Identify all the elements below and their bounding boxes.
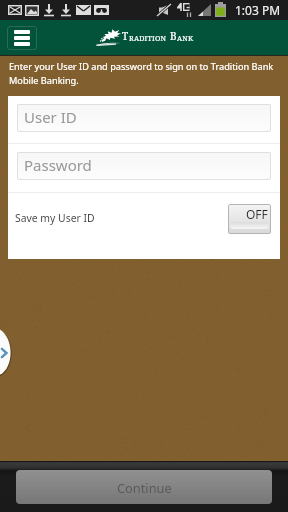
staticText: T	[122, 29, 129, 43]
staticText: Continue	[117, 479, 172, 496]
staticText: B	[170, 29, 177, 43]
staticText: User ID	[24, 107, 77, 127]
staticText: Enter your User ID and password to sign …	[9, 60, 284, 87]
staticText: ANK	[177, 33, 194, 43]
button[interactable]: Open side panel	[0, 328, 14, 378]
staticText: 1:03 PM	[235, 2, 281, 18]
staticText: RADITION	[129, 33, 167, 43]
button[interactable]: User ID	[17, 104, 271, 132]
button[interactable]: Open navigation menu	[7, 26, 37, 50]
staticText: OFF	[246, 206, 268, 222]
button[interactable]: Password	[17, 152, 271, 180]
button[interactable]: Continue	[16, 470, 272, 504]
staticText: Save my User ID	[15, 211, 95, 225]
staticText: Password	[24, 155, 92, 175]
button[interactable]: Save my User ID, off	[228, 204, 271, 234]
